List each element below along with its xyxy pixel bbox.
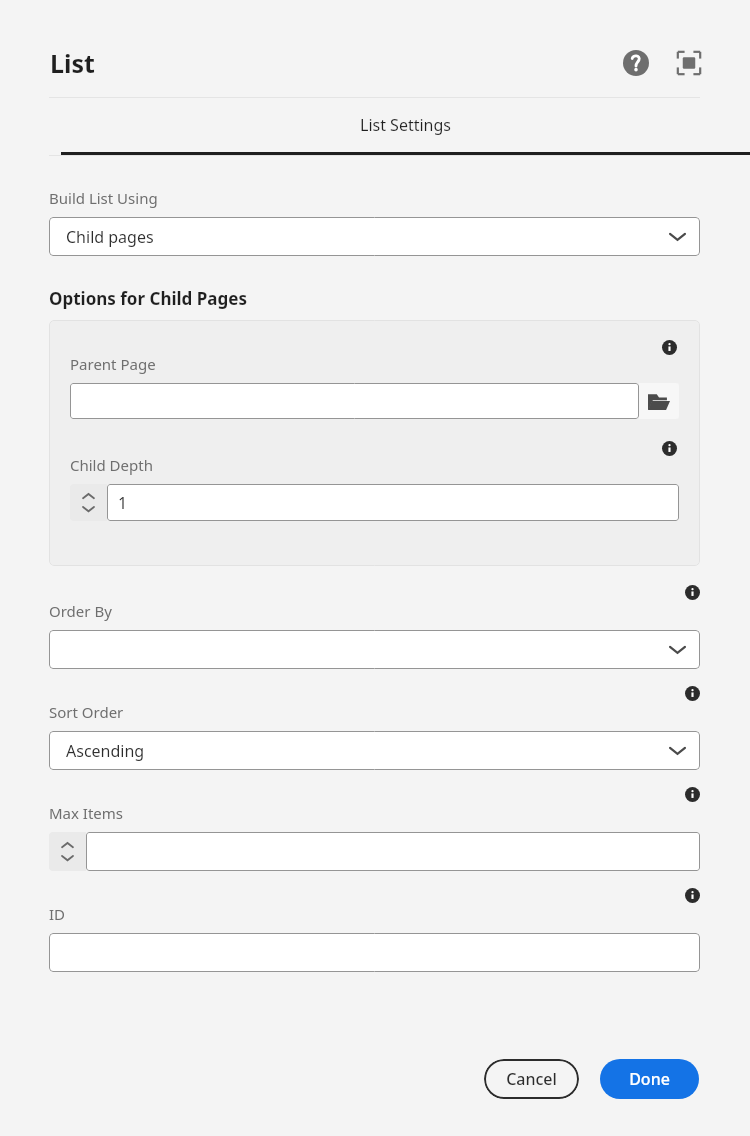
staticText: Options for Child Pages bbox=[49, 287, 247, 310]
button[interactable]: Information bbox=[685, 686, 700, 701]
button[interactable]: Fullscreen bbox=[676, 50, 702, 76]
staticText: List bbox=[50, 46, 95, 80]
staticText: Child Depth bbox=[70, 455, 153, 475]
button[interactable]: Cancel bbox=[484, 1059, 579, 1099]
button[interactable]: Help bbox=[623, 50, 649, 76]
button[interactable] bbox=[86, 832, 700, 871]
button[interactable]: Information bbox=[662, 441, 677, 456]
staticText: List Settings bbox=[360, 114, 451, 136]
button[interactable]: Child pages bbox=[49, 217, 700, 256]
staticText: Order By bbox=[49, 601, 112, 621]
staticText: ID bbox=[49, 904, 66, 924]
staticText: Build List Using bbox=[49, 188, 158, 208]
staticText: Parent Page bbox=[70, 354, 156, 374]
button[interactable]: List Settings bbox=[61, 98, 750, 155]
button[interactable] bbox=[70, 383, 639, 419]
button[interactable]: Information bbox=[685, 585, 700, 600]
button[interactable]: Information bbox=[685, 888, 700, 903]
button[interactable]: Done bbox=[600, 1059, 699, 1099]
staticText: Cancel bbox=[506, 1068, 557, 1090]
button[interactable]: Increment or decrement bbox=[70, 484, 107, 521]
staticText: Done bbox=[629, 1068, 670, 1090]
staticText: Max Items bbox=[49, 803, 124, 823]
button[interactable]: 1 bbox=[107, 484, 679, 521]
button[interactable]: Information bbox=[662, 340, 677, 355]
staticText: Child pages bbox=[66, 226, 154, 248]
button[interactable]: Information bbox=[685, 787, 700, 802]
button[interactable] bbox=[49, 630, 700, 669]
button[interactable]: Increment or decrement bbox=[49, 832, 86, 871]
staticText: Ascending bbox=[66, 740, 145, 762]
staticText: 1 bbox=[118, 492, 128, 514]
button[interactable]: Ascending bbox=[49, 731, 700, 770]
button[interactable] bbox=[49, 933, 700, 972]
button[interactable]: Browse for page bbox=[639, 383, 679, 419]
staticText: Sort Order bbox=[49, 702, 124, 722]
